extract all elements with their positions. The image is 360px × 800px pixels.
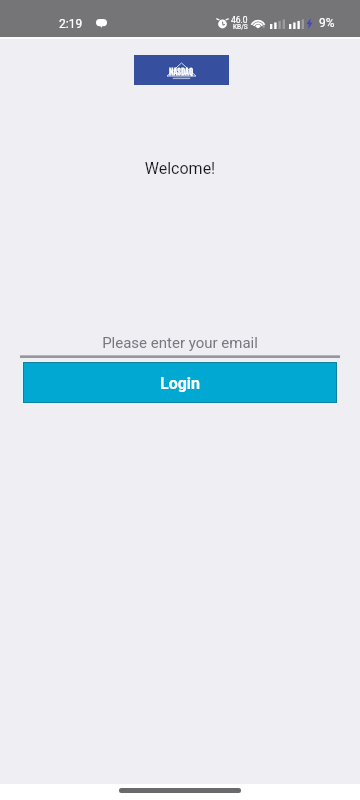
button[interactable]: Please enter your email [0, 334, 360, 358]
button[interactable]: Login [22, 361, 338, 404]
staticText: NASDAQ [169, 65, 194, 76]
staticText: 46.0 [231, 15, 248, 25]
staticText: KB/S [233, 23, 248, 31]
staticText: Please enter your email [0, 334, 360, 352]
staticText: Login [160, 374, 201, 393]
staticText: 2:19 [59, 17, 83, 31]
button[interactable]: Nasdaq logo [134, 55, 229, 85]
staticText: 9% [319, 16, 335, 30]
button[interactable]: Home [119, 788, 241, 793]
staticText: Welcome! [0, 159, 360, 178]
